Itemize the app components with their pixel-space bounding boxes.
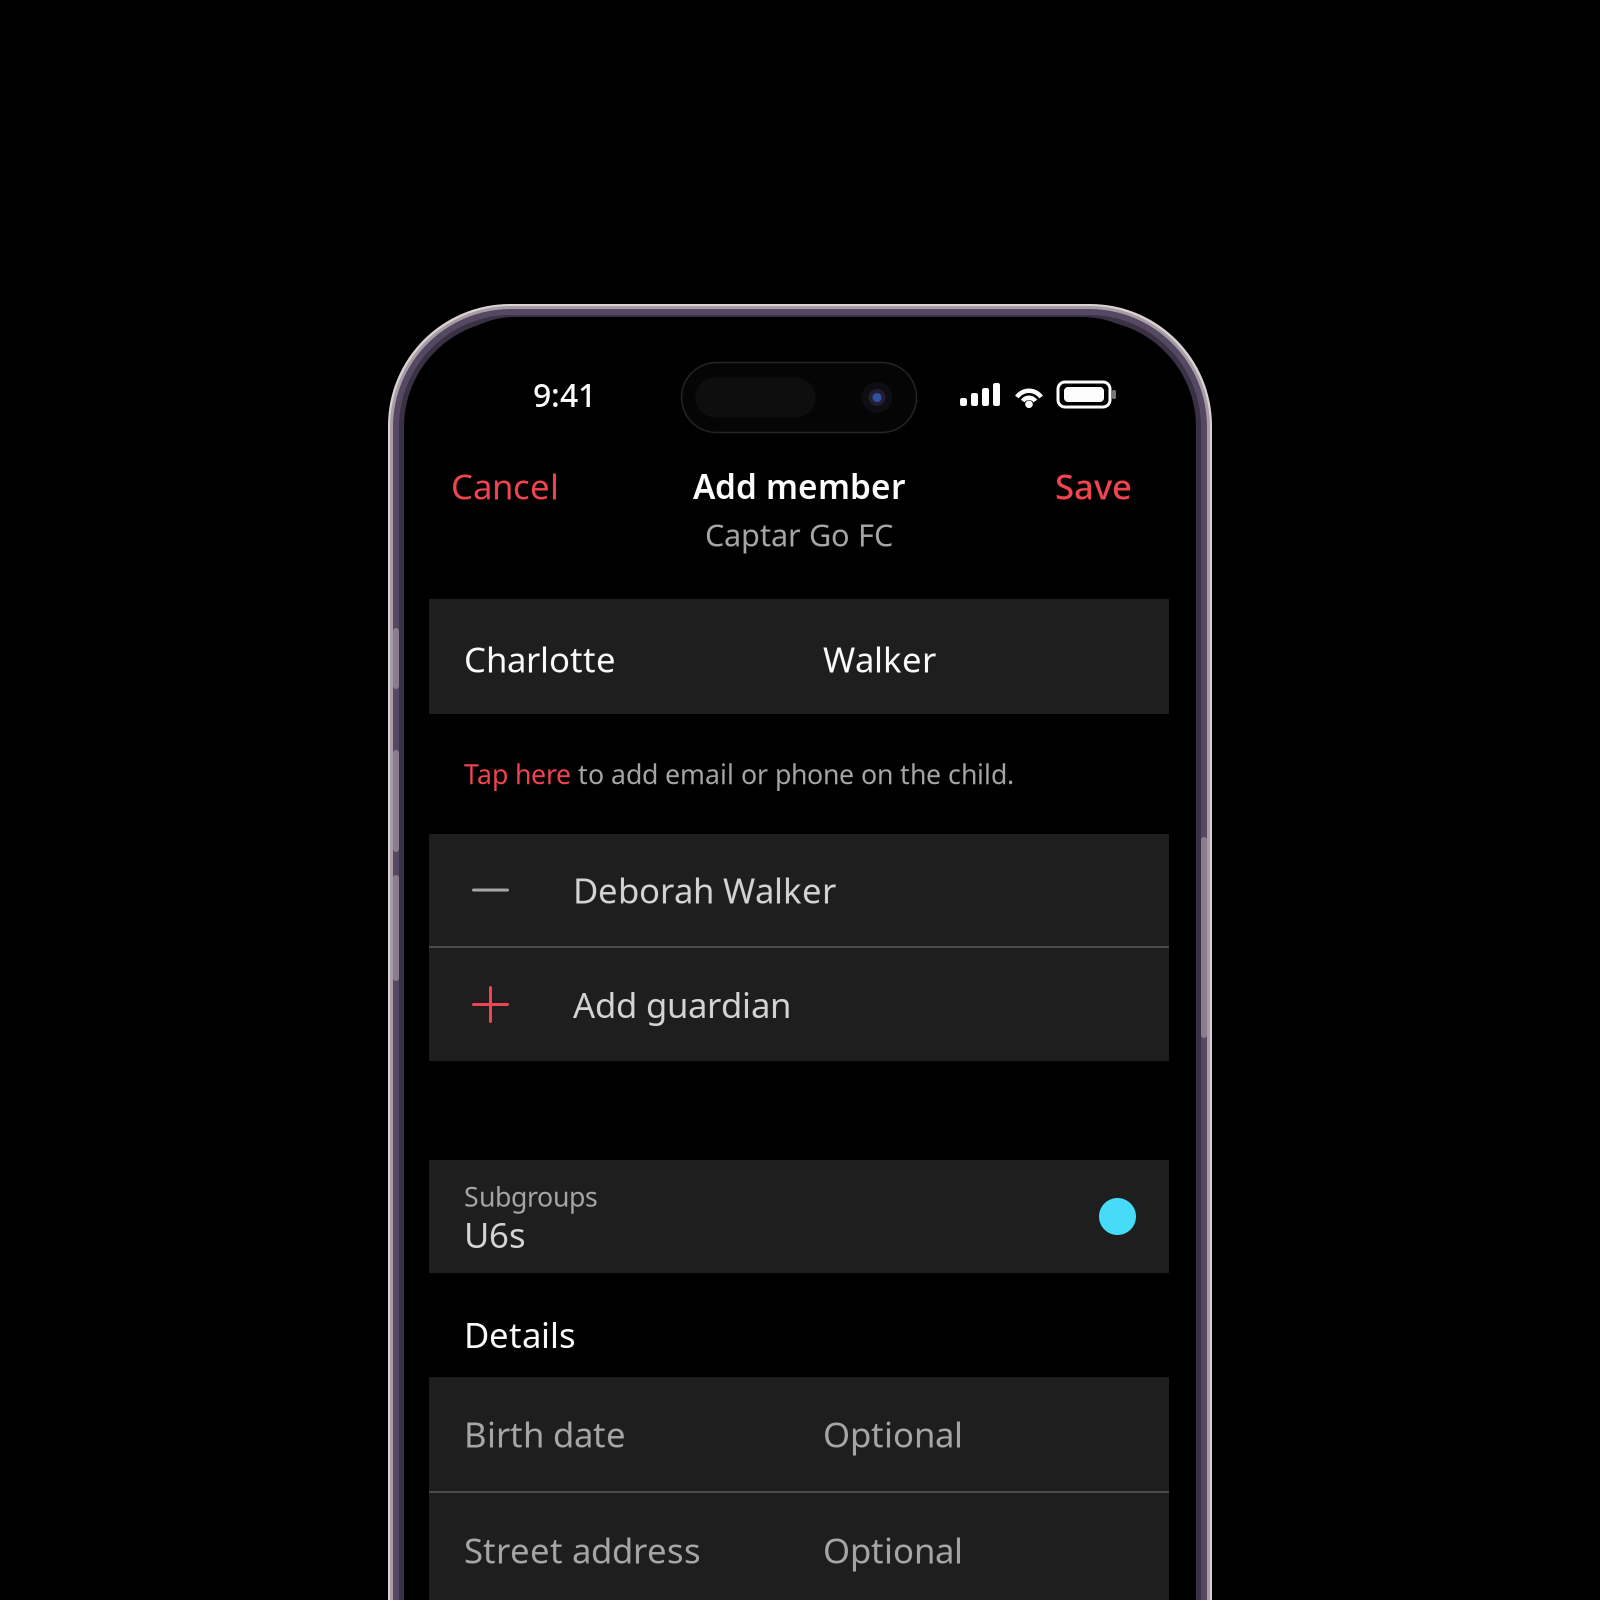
button[interactable]: Deborah Walker: [429, 834, 1169, 946]
button[interactable]: Add guardian: [429, 948, 1169, 1061]
staticText: Add member: [693, 464, 905, 508]
button[interactable]: Save: [1043, 464, 1144, 508]
button[interactable]: Cancel: [439, 464, 571, 508]
button[interactable]: Street address: [429, 1493, 1169, 1600]
staticText: Charlotte: [464, 636, 616, 682]
button[interactable]: Walker: [823, 601, 1169, 716]
staticText: Tap here: [464, 756, 571, 792]
staticText: Deborah Walker: [573, 867, 836, 913]
staticText: 9:41: [533, 373, 596, 416]
staticText: Subgroups: [464, 1179, 598, 1214]
staticText: to add email or phone on the child.: [571, 756, 1014, 792]
staticText: Cancel: [451, 463, 559, 509]
staticText: Street address: [464, 1527, 701, 1573]
staticText: Optional: [823, 1527, 963, 1573]
staticText: U6s: [464, 1211, 526, 1257]
staticText: Walker: [823, 636, 936, 682]
staticText: Add guardian: [573, 981, 791, 1027]
button[interactable]: Charlotte: [464, 601, 823, 716]
staticText: Save: [1055, 463, 1132, 509]
button[interactable]: Subgroups: [429, 1160, 1169, 1273]
button[interactable]: Birth date: [429, 1377, 1169, 1491]
staticText: Birth date: [464, 1411, 626, 1457]
staticText: Details: [464, 1311, 576, 1357]
button[interactable]: Tap here: [429, 714, 1169, 834]
staticText: Captar Go FC: [705, 514, 893, 555]
staticText: Optional: [823, 1411, 963, 1457]
